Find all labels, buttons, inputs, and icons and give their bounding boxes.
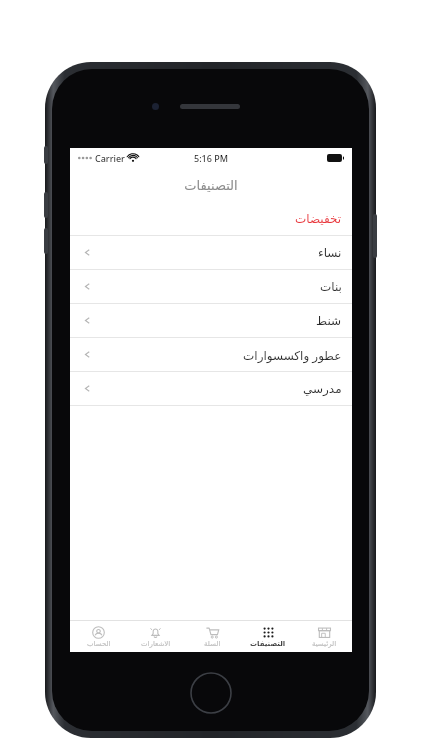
staticText: 5:16 PM [194, 152, 228, 164]
staticText: مدرسي [303, 382, 342, 396]
staticText: الحساب [87, 640, 111, 648]
button[interactable]: الاشعارات [127, 621, 184, 652]
button[interactable]: شنط [70, 304, 352, 338]
button[interactable]: السلة [184, 621, 240, 652]
button[interactable]: تخفيضات [70, 202, 352, 236]
staticText: شنط [316, 314, 342, 328]
button[interactable]: عطور واكسسوارات [70, 338, 352, 372]
staticText: السلة [204, 640, 221, 648]
staticText: التصنيفات [250, 640, 286, 648]
button[interactable]: الحساب [70, 621, 127, 652]
button[interactable]: التصنيفات [240, 621, 296, 652]
staticText: الرئيسية [312, 640, 337, 648]
staticText: الاشعارات [141, 640, 171, 648]
staticText: تخفيضات [295, 212, 342, 226]
button[interactable]: الرئيسية [296, 621, 352, 652]
staticText: بنات [320, 280, 342, 294]
button[interactable]: بنات [70, 270, 352, 304]
button[interactable]: مدرسي [70, 372, 352, 406]
staticText: عطور واكسسوارات [243, 347, 342, 363]
staticText: التصنيفات [184, 178, 238, 193]
staticText: Carrier [95, 152, 125, 164]
staticText: نساء [318, 246, 342, 260]
button[interactable]: نساء [70, 236, 352, 270]
